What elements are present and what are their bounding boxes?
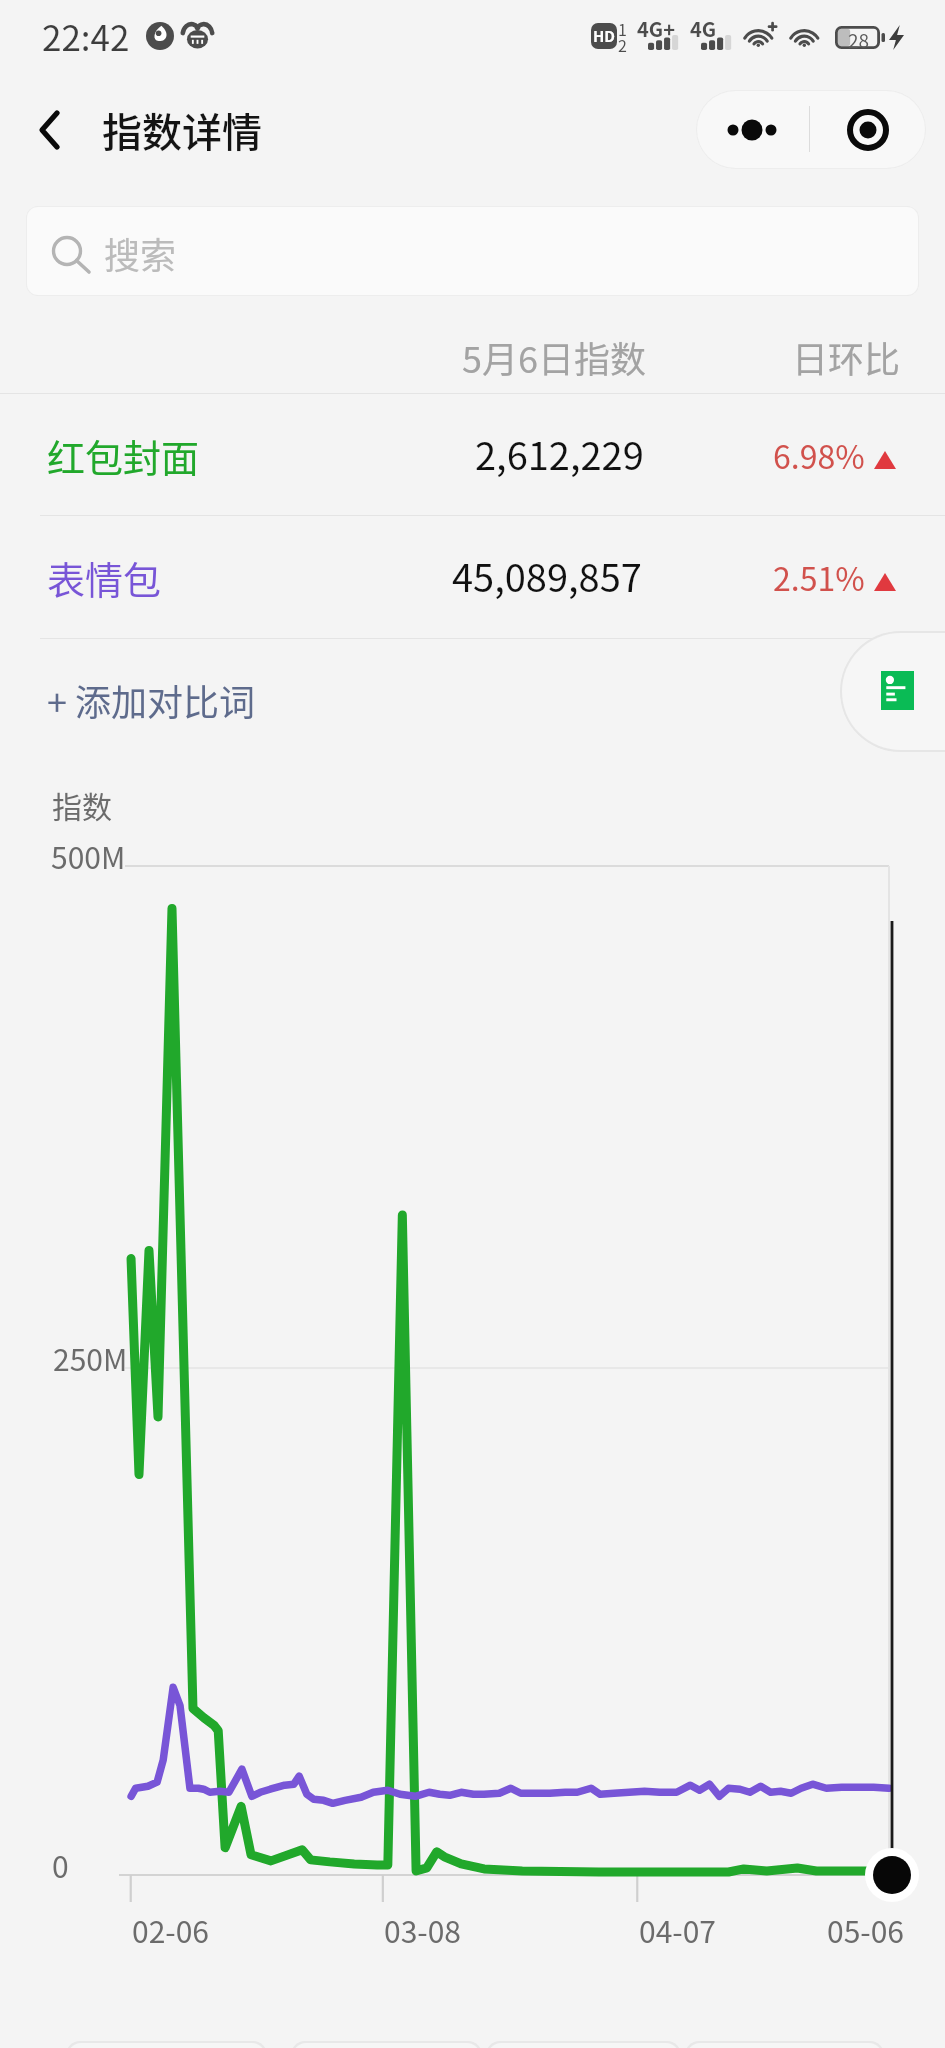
button[interactable]: + 添加对比词	[0, 639, 945, 754]
staticText: 4G	[690, 14, 717, 43]
button[interactable]: 红包封面	[0, 393, 945, 515]
button[interactable]: More options	[697, 91, 810, 168]
staticText: 02-06	[132, 1908, 210, 1951]
staticText: 2.51%	[773, 554, 865, 600]
staticText: HD	[593, 25, 616, 47]
staticText: 搜索	[104, 227, 177, 279]
button[interactable]: Filter chip	[66, 2041, 267, 2048]
staticText: 22:42	[42, 10, 130, 61]
staticText: 指数	[52, 783, 112, 826]
button[interactable]: 表情包	[0, 515, 945, 637]
staticText: 4G+	[637, 14, 675, 43]
button[interactable]: Filter chip	[486, 2041, 681, 2048]
staticText: 500M	[51, 834, 126, 877]
button[interactable]: Close mini program	[811, 91, 925, 168]
staticText: 04-07	[639, 1908, 717, 1951]
button[interactable]: Back	[4, 85, 96, 177]
staticText: 03-08	[384, 1908, 462, 1951]
staticText: 指数详情	[102, 101, 262, 159]
button[interactable]: Filter chip	[685, 2041, 884, 2048]
staticText: 45,089,857	[452, 548, 642, 603]
staticText: 2	[618, 33, 627, 56]
staticText: 5月6日指数	[462, 331, 646, 383]
staticText: 0	[52, 1843, 69, 1886]
staticText: 表情包	[47, 550, 162, 605]
button[interactable]: Report	[842, 633, 945, 750]
staticText: 6.98%	[773, 432, 865, 478]
staticText: 250M	[53, 1336, 128, 1379]
staticText: 1	[618, 17, 627, 40]
staticText: 05-06	[827, 1908, 905, 1951]
staticText: 28	[848, 26, 870, 54]
staticText: 2,612,229	[475, 426, 644, 481]
staticText: 日环比	[792, 331, 901, 383]
staticText: 红包封面	[47, 428, 200, 483]
button[interactable]: 搜索	[27, 207, 918, 295]
staticText: + 添加对比词	[47, 674, 256, 726]
button[interactable]: Filter chip	[291, 2041, 482, 2048]
